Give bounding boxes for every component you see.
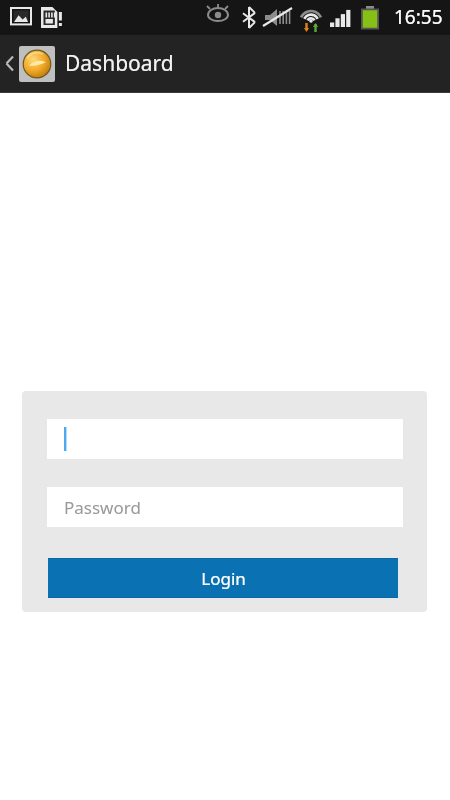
button[interactable]: Username field <box>47 419 403 459</box>
staticText: Login <box>201 567 246 590</box>
staticText: Dashboard <box>65 49 174 78</box>
button[interactable]: Login <box>48 558 398 598</box>
staticText: Password <box>64 496 141 519</box>
staticText: 16:55 <box>394 4 443 30</box>
button[interactable]: Password <box>47 487 403 527</box>
button[interactable]: Up, Dashboard <box>0 35 450 92</box>
